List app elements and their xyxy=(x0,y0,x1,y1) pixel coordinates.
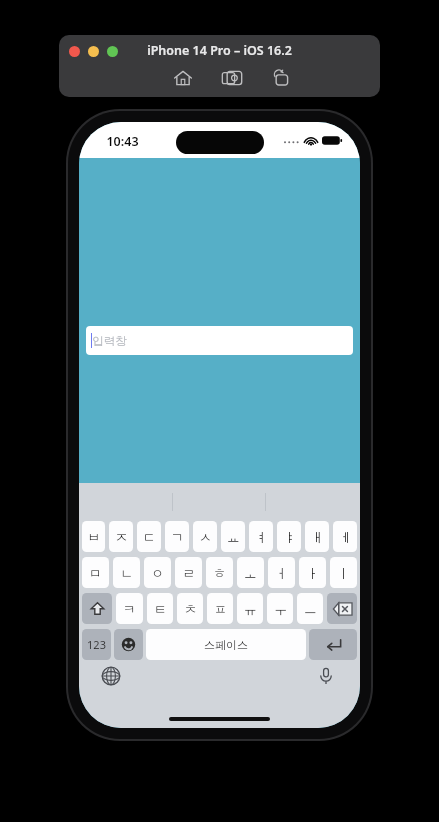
staticText: 입력창 xyxy=(92,334,127,348)
staticText: ㄱ xyxy=(171,529,184,545)
button[interactable]: ㅡ xyxy=(297,593,323,624)
button[interactable]: ㅌ xyxy=(147,593,173,624)
staticText: ㅏ xyxy=(306,565,319,581)
staticText: ㅋ xyxy=(123,601,136,617)
staticText: 10:43 xyxy=(106,133,139,150)
staticText: ㅊ xyxy=(184,601,197,617)
staticText: ㅍ xyxy=(214,601,227,617)
button[interactable]: ㅛ xyxy=(221,521,245,552)
button[interactable]: Emoji xyxy=(114,629,143,660)
staticText: ㄴ xyxy=(120,565,133,581)
staticText: ㅔ xyxy=(339,529,352,545)
staticText: ㅅ xyxy=(199,529,212,545)
button[interactable]: ㅠ xyxy=(237,593,263,624)
button[interactable]: ㅓ xyxy=(268,557,295,588)
staticText: ㅌ xyxy=(154,601,167,617)
staticText: ㅁ xyxy=(89,565,102,581)
button[interactable]: ㅁ xyxy=(82,557,109,588)
staticText: ㅈ xyxy=(115,529,128,545)
button[interactable]: ㅅ xyxy=(193,521,217,552)
button[interactable]: ㅐ xyxy=(305,521,329,552)
button[interactable]: ㅇ xyxy=(144,557,171,588)
staticText: 스페이스 xyxy=(204,638,248,652)
button[interactable]: 스페이스 xyxy=(146,629,306,660)
staticText: iPhone 14 Pro – iOS 16.2 xyxy=(147,42,292,59)
button[interactable]: ㄴ xyxy=(113,557,140,588)
button[interactable]: Maximize xyxy=(107,46,118,57)
staticText: ㅐ xyxy=(311,529,324,545)
button[interactable]: Backspace xyxy=(327,593,357,624)
button[interactable]: Return xyxy=(309,629,357,660)
button[interactable]: ㅋ xyxy=(116,593,143,624)
staticText: ㄷ xyxy=(143,529,156,545)
staticText: ㅎ xyxy=(213,565,226,581)
button[interactable]: ㄷ xyxy=(137,521,161,552)
button[interactable]: 입력창 xyxy=(86,326,353,355)
staticText: ㅜ xyxy=(274,601,287,617)
button[interactable]: Rotate xyxy=(270,67,292,89)
staticText: ㅕ xyxy=(255,529,268,545)
button[interactable]: ㅣ xyxy=(330,557,357,588)
button[interactable]: ㅈ xyxy=(109,521,133,552)
button[interactable]: ㅊ xyxy=(177,593,203,624)
button[interactable]: Dictation xyxy=(316,666,336,686)
staticText: ㅂ xyxy=(87,529,100,545)
staticText: ㅇ xyxy=(151,565,164,581)
button[interactable]: Close xyxy=(69,46,80,57)
staticText: ㅠ xyxy=(244,601,257,617)
button[interactable]: 123 xyxy=(82,629,111,660)
button[interactable]: ㅏ xyxy=(299,557,326,588)
button[interactable]: ㅔ xyxy=(333,521,357,552)
button[interactable]: ㅍ xyxy=(207,593,233,624)
button[interactable]: Screenshot xyxy=(221,67,243,89)
staticText: ㅛ xyxy=(227,529,240,545)
button[interactable]: ㅂ xyxy=(82,521,105,552)
staticText: ㅗ xyxy=(244,565,257,581)
staticText: ㅣ xyxy=(337,565,350,581)
button[interactable]: Home xyxy=(172,67,194,89)
staticText: ㄹ xyxy=(182,565,195,581)
staticText: 123 xyxy=(87,637,106,652)
button[interactable]: Change keyboard xyxy=(101,666,121,686)
staticText: ㅑ xyxy=(283,529,296,545)
staticText: ㅡ xyxy=(304,601,317,617)
button[interactable]: ㅕ xyxy=(249,521,273,552)
button[interactable]: Minimize xyxy=(88,46,99,57)
button[interactable]: ㅎ xyxy=(206,557,233,588)
button[interactable]: ㅗ xyxy=(237,557,264,588)
button[interactable]: ㄹ xyxy=(175,557,202,588)
button[interactable]: ㅜ xyxy=(267,593,293,624)
staticText: ㅓ xyxy=(275,565,288,581)
button[interactable]: ㅑ xyxy=(277,521,301,552)
button[interactable]: ㄱ xyxy=(165,521,189,552)
button[interactable]: Shift xyxy=(82,593,112,624)
